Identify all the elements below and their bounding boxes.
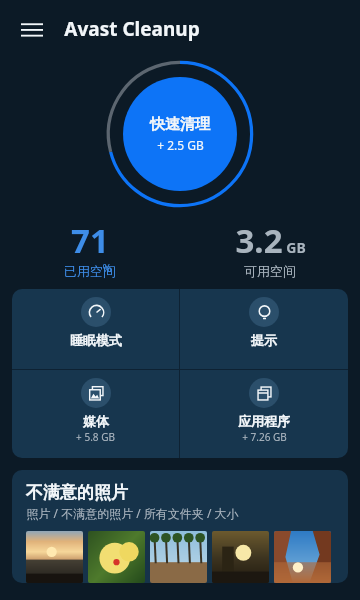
button[interactable]: 快速清理 xyxy=(106,60,254,208)
button[interactable]: Photo 3 xyxy=(150,531,207,583)
staticText: 可用空间 xyxy=(244,263,296,279)
staticText: 已用空间 xyxy=(64,263,116,279)
button[interactable]: Photo 4 xyxy=(212,531,269,583)
button[interactable]: Photo 2 xyxy=(88,531,145,583)
button[interactable]: 提示 xyxy=(180,289,348,369)
staticText: 媒体 xyxy=(83,413,109,429)
staticText: 照片 / 不满意的照片 / 所有文件夹 / 大小 xyxy=(26,505,239,521)
button[interactable]: 媒体 xyxy=(12,370,179,458)
button[interactable]: Photo 1 xyxy=(26,531,83,583)
staticText: + 2.5 GB xyxy=(157,137,204,153)
button[interactable]: 不满意的照片 xyxy=(12,470,348,583)
staticText: % xyxy=(102,260,112,275)
button[interactable]: 睡眠模式 xyxy=(12,289,179,369)
staticText: + 5.8 GB xyxy=(76,430,115,444)
staticText: 71 xyxy=(71,218,109,263)
staticText: 睡眠模式 xyxy=(70,332,122,348)
staticText: + 7.26 GB xyxy=(242,430,287,444)
staticText: Avast Cleanup xyxy=(64,16,200,42)
staticText: GB xyxy=(286,238,306,257)
staticText: 快速清理 xyxy=(150,115,210,134)
button[interactable]: 应用程序 xyxy=(180,370,348,458)
staticText: 提示 xyxy=(251,332,277,348)
button[interactable]: Menu xyxy=(12,9,52,49)
staticText: 应用程序 xyxy=(238,413,290,429)
button[interactable]: Photo 5 xyxy=(274,531,331,583)
staticText: 3.2 xyxy=(235,218,283,263)
staticText: 不满意的照片 xyxy=(26,482,128,503)
